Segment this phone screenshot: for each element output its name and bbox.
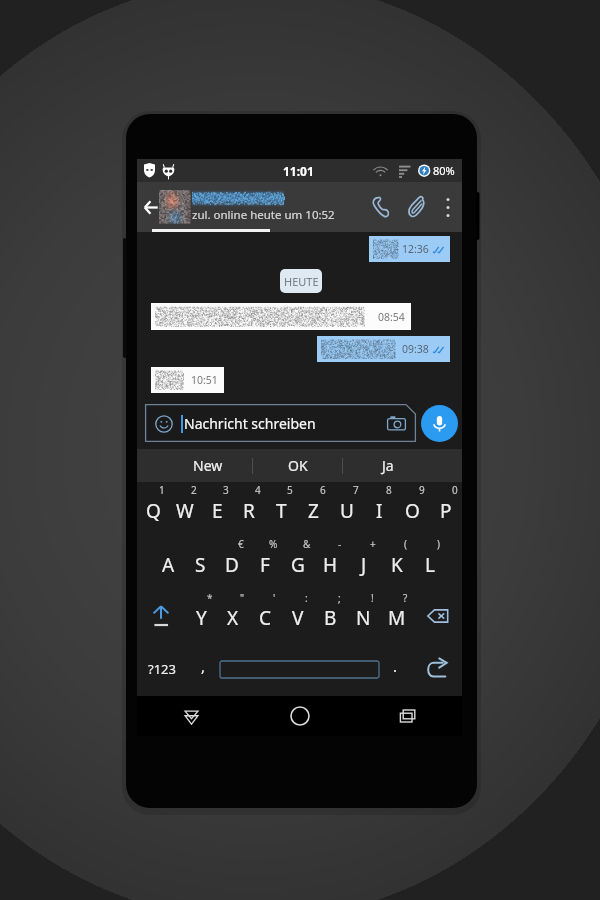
button[interactable]: 08:54 [151,303,411,330]
button[interactable]: 8 [363,482,396,536]
button[interactable]: 3 [201,482,233,536]
button[interactable]: . [379,642,412,696]
button[interactable]: Enter [412,642,462,696]
staticText: 2 [191,483,197,497]
button[interactable]: 2 [169,482,201,536]
staticText: U [340,498,354,524]
staticText: 8 [386,483,392,497]
staticText: D [225,552,239,578]
staticText: ) [437,537,440,551]
staticText: 7 [353,483,359,497]
button[interactable]: Home [246,696,354,736]
button[interactable]: ( [380,536,413,590]
button[interactable]: % [248,536,281,590]
button[interactable]: OK [253,449,342,482]
button[interactable]: 5 [265,482,297,536]
staticText: C [259,605,272,631]
button[interactable]: Hide keyboard [137,696,246,736]
staticText: 6 [320,483,326,497]
button[interactable]: Shift [137,590,185,642]
staticText: 09:38 [402,342,429,356]
staticText: Nachricht schreiben [184,414,316,433]
button[interactable]: Backspace [413,590,462,642]
staticText: W [176,498,194,524]
button[interactable]: 9 [396,482,429,536]
button[interactable]: More options [434,182,462,232]
button[interactable]: 7 [330,482,363,536]
staticText: 4 [255,483,261,497]
staticText: G [291,552,305,578]
staticText: E [212,498,223,524]
button[interactable]: ) [413,536,446,590]
staticText: Ja [382,456,394,475]
staticText: , [201,656,206,676]
button[interactable]: 4 [233,482,265,536]
button[interactable]: 6 [297,482,330,536]
staticText: L [425,552,435,578]
button[interactable]: ! [347,590,380,642]
button[interactable]: Call [362,182,398,232]
button[interactable]: 10:51 [151,367,224,393]
staticText: F [260,552,270,578]
staticText: * [207,591,213,605]
button[interactable]: 1 [137,482,169,536]
button[interactable]: A [152,536,184,590]
staticText: ( [404,537,407,551]
staticText: " [240,591,245,605]
staticText: & [303,537,311,551]
staticText: A [162,552,175,578]
staticText: 3 [223,483,229,497]
staticText: P [440,498,452,524]
staticText: - [338,537,342,551]
button[interactable]: & [281,536,314,590]
button[interactable]: - [314,536,347,590]
button[interactable]: S [184,536,216,590]
staticText: H [323,552,338,578]
button[interactable]: ; [314,590,347,642]
staticText: B [324,605,337,631]
button[interactable]: € [216,536,248,590]
staticText: 08:54 [378,310,405,324]
staticText: ! [371,591,374,605]
button[interactable]: : [281,590,314,642]
staticText: ? [403,591,408,605]
staticText: Z [308,498,319,524]
button[interactable]: Back [138,182,164,232]
staticText: OK [288,456,308,475]
staticText: 12:36 [402,242,429,256]
button[interactable]: + [347,536,380,590]
staticText: New [193,456,223,475]
staticText: 1 [159,483,165,497]
staticText: ; [338,591,341,605]
button[interactable]: Voice message [421,405,458,442]
button[interactable]: Ja [343,449,432,482]
button[interactable]: Nachricht schreiben [145,404,416,442]
button[interactable]: , [187,642,220,696]
button[interactable]: Space [220,661,379,678]
staticText: 11:01 [283,163,314,179]
button[interactable]: ' [249,590,281,642]
button[interactable]: 12:36 [369,236,450,262]
staticText: HEUTE [284,274,319,289]
button[interactable]: * [185,590,217,642]
button[interactable]: Back [137,182,462,232]
button[interactable]: HEUTE [280,269,322,293]
staticText: S [195,552,206,578]
staticText: 5 [287,483,293,497]
button[interactable]: 09:38 [317,336,450,362]
button[interactable]: New [163,449,252,482]
staticText: + [370,537,376,551]
button[interactable]: 0 [429,482,462,536]
button[interactable]: Recent apps [354,696,462,736]
staticText: R [243,498,255,524]
staticText: . [393,656,398,676]
staticText: Y [196,605,207,631]
staticText: zul. online heute um 10:52 [192,207,335,223]
button[interactable]: Attach [398,182,434,232]
button[interactable]: " [217,590,249,642]
staticText: M [388,605,406,631]
staticText: 9 [419,483,425,497]
button[interactable]: ?123 [137,642,187,696]
button[interactable]: ? [380,590,413,642]
staticText: N [356,605,371,631]
